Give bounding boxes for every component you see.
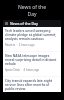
button[interactable]: New NASA telescope images reveal surpris… xyxy=(3,52,61,76)
staticText: Space Desk · 4 hours ago xyxy=(5,68,40,72)
button[interactable]: Open navigation menu xyxy=(3,20,10,27)
staticText: Reuters · 2 hours ago xyxy=(5,43,35,47)
staticText: News of the Day xyxy=(10,21,38,26)
button[interactable]: Tech leaders unveil sweeping climate ple… xyxy=(3,27,61,51)
staticText: New NASA telescope images reveal surpris… xyxy=(5,54,59,66)
staticText: City transit expands late-night service … xyxy=(5,79,59,91)
button[interactable]: City transit expands late-night service … xyxy=(3,77,61,92)
staticText: News of the Day xyxy=(18,4,46,17)
staticText: Tech leaders unveil sweeping climate ple… xyxy=(5,29,59,41)
